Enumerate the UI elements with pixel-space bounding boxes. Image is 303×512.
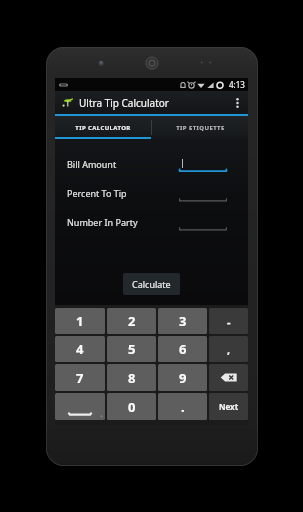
button[interactable]: 4 — [55, 336, 105, 362]
button[interactable]: TIP CALCULATOR — [55, 116, 151, 139]
staticText: - — [227, 314, 231, 329]
button[interactable]: 8 — [107, 364, 156, 391]
staticText: 3 — [179, 312, 187, 330]
button[interactable]: Bill Amount — [55, 155, 248, 173]
button[interactable]: Delete — [209, 364, 248, 391]
staticText: . — [181, 398, 185, 416]
button[interactable]: TIP ETIQUETTE — [152, 116, 248, 139]
button[interactable]: Calculate — [123, 273, 180, 295]
staticText: Calculate — [132, 278, 171, 290]
button[interactable]: 9 — [158, 364, 207, 391]
staticText: 6 — [179, 340, 187, 358]
button[interactable]: 0 — [107, 393, 156, 420]
button[interactable]: Number In Party — [55, 213, 248, 231]
button[interactable]: 5 — [107, 336, 156, 362]
button[interactable]: - — [209, 308, 248, 334]
staticText: TIP CALCULATOR — [75, 124, 131, 132]
staticText: 1 — [76, 312, 84, 330]
staticText: 9 — [179, 369, 187, 387]
staticText: 8 — [128, 369, 136, 387]
button[interactable]: Space — [55, 393, 105, 420]
staticText: , — [227, 342, 231, 357]
staticText: 0 — [128, 398, 136, 416]
button[interactable]: 6 — [158, 336, 207, 362]
staticText: Next — [219, 401, 239, 412]
staticText: Percent To Tip — [67, 187, 127, 199]
staticText: 7 — [76, 369, 84, 387]
button[interactable]: , — [209, 336, 248, 362]
staticText: Ultra Tip Calculator — [79, 96, 169, 110]
staticText: 4:13 — [229, 79, 245, 90]
staticText: 4 — [76, 340, 84, 358]
staticText: 5 — [128, 340, 136, 358]
button[interactable]: 7 — [55, 364, 105, 391]
button[interactable]: Percent To Tip — [55, 184, 248, 202]
button[interactable]: 1 — [55, 308, 105, 334]
staticText: 2 — [128, 312, 136, 330]
button[interactable]: More options — [230, 91, 244, 114]
button[interactable]: . — [158, 393, 207, 420]
button[interactable]: 2 — [107, 308, 156, 334]
button[interactable]: 3 — [158, 308, 207, 334]
staticText: TIP ETIQUETTE — [176, 124, 225, 132]
staticText: Bill Amount — [67, 158, 117, 170]
button[interactable]: Next — [209, 393, 248, 420]
staticText: Number In Party — [67, 216, 138, 228]
